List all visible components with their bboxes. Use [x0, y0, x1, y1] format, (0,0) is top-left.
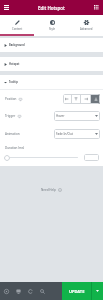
button[interactable]: Settings [0, 282, 12, 300]
button[interactable]: Hotspot [0, 57, 103, 71]
staticText: Style [49, 27, 56, 31]
button[interactable]: Align top [72, 94, 80, 104]
staticText: Trigger [5, 114, 16, 118]
staticText: Tooltip [9, 80, 18, 84]
staticText: Hover [56, 114, 65, 118]
button[interactable]: UPDATE [62, 282, 91, 300]
button[interactable]: Hover [54, 111, 100, 121]
staticText: Fade In/Out [56, 132, 73, 136]
button[interactable]: Need Help [41, 188, 62, 192]
button[interactable]: Preview [36, 282, 48, 300]
staticText: Need Help [41, 188, 56, 192]
button[interactable]: Background [0, 38, 103, 52]
button[interactable]: History [24, 282, 36, 300]
staticText: Hotspot [9, 62, 20, 66]
staticText: Duration (ms) [5, 146, 25, 150]
button[interactable]: Align right [81, 94, 90, 104]
staticText: Background [9, 43, 25, 47]
button[interactable]: Duration value [84, 154, 99, 161]
button[interactable]: Tooltip [0, 75, 103, 89]
button[interactable]: Duration slider [4, 155, 10, 161]
button[interactable]: Menu [1, 2, 12, 13]
button[interactable]: Align bottom [91, 94, 100, 104]
button[interactable]: Fade In/Out [54, 129, 100, 139]
staticText: Advanced [80, 27, 93, 31]
staticText: UPDATE [69, 289, 85, 294]
button[interactable]: Responsive mode [12, 282, 24, 300]
staticText: Animation [5, 132, 20, 136]
button[interactable]: Content [0, 15, 35, 36]
button[interactable]: More options [92, 282, 103, 300]
staticText: Position [5, 97, 17, 101]
button[interactable]: Apps [91, 2, 102, 13]
staticText: Content [12, 27, 23, 31]
staticText: Edit Hotspot [38, 5, 65, 11]
button[interactable]: Advanced [69, 15, 103, 36]
button[interactable]: Style [35, 15, 69, 36]
button[interactable]: Align left [63, 94, 71, 104]
